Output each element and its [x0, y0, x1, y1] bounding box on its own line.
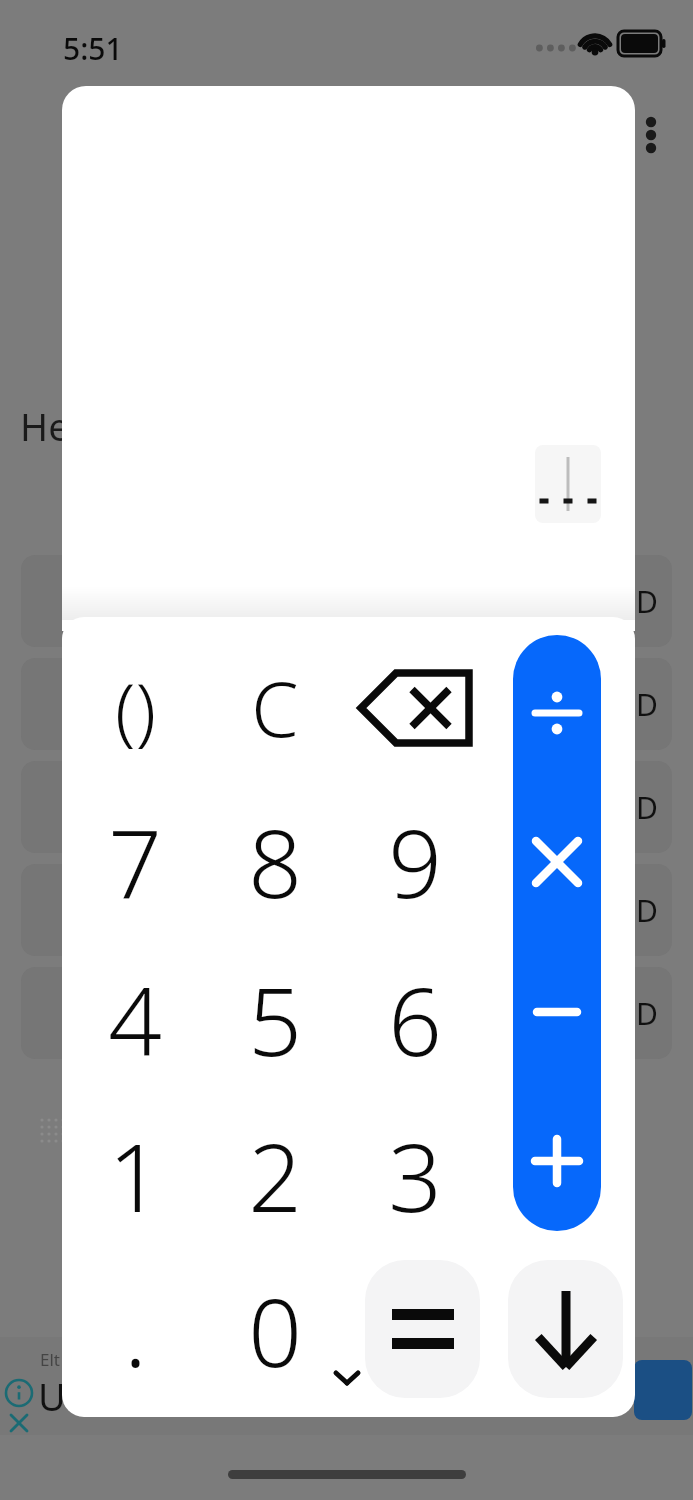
button[interactable]: Subtract	[513, 960, 601, 1064]
button[interactable]: Value input	[535, 445, 601, 523]
staticText: 5	[248, 956, 302, 1080]
staticText: D	[636, 684, 658, 725]
button[interactable]: 7	[65, 798, 205, 922]
button[interactable]: 8	[205, 798, 345, 922]
staticText: Us	[38, 1370, 84, 1422]
button[interactable]: 6	[345, 956, 485, 1080]
staticText: 7	[108, 798, 162, 922]
staticText: 1	[108, 1112, 162, 1236]
button[interactable]: 4	[65, 956, 205, 1080]
button[interactable]: Multiply	[513, 810, 601, 914]
button[interactable]: .	[65, 1267, 205, 1391]
button[interactable]: ()	[65, 646, 205, 770]
staticText: 3	[388, 1112, 442, 1236]
staticText: 5:51	[63, 28, 123, 69]
button[interactable]: 1	[65, 1112, 205, 1236]
button[interactable]: 2	[205, 1112, 345, 1236]
button[interactable]: D	[21, 864, 672, 956]
staticText: 8	[248, 798, 302, 922]
button[interactable]: Insert result	[508, 1260, 623, 1398]
staticText: 2	[248, 1112, 302, 1236]
button[interactable]: Expand	[327, 1362, 367, 1394]
staticText: D	[636, 890, 658, 931]
button[interactable]: Backspace	[345, 653, 485, 763]
button[interactable]: Divide	[513, 661, 601, 765]
staticText: 0	[248, 1267, 302, 1391]
staticText: ()	[115, 658, 156, 759]
button[interactable]: 0	[205, 1267, 345, 1391]
staticText: Elt	[40, 1348, 60, 1371]
button[interactable]: D	[21, 967, 672, 1059]
button[interactable]: D	[21, 658, 672, 750]
button[interactable]: 9	[345, 798, 485, 922]
staticText: D	[636, 993, 658, 1034]
button[interactable]: Equals	[365, 1260, 480, 1398]
button[interactable]: D	[21, 761, 672, 853]
staticText: .	[124, 1267, 147, 1391]
staticText: 4	[108, 956, 162, 1080]
staticText: Height calculator	[20, 400, 325, 452]
button[interactable]: 3	[345, 1112, 485, 1236]
button[interactable]: Banner action	[634, 1360, 692, 1420]
button[interactable]: 5	[205, 956, 345, 1080]
staticText: 6	[388, 956, 442, 1080]
staticText: 9	[388, 798, 442, 922]
button[interactable]: More options	[632, 105, 670, 165]
staticText: D	[636, 787, 658, 828]
button[interactable]: C	[205, 646, 345, 770]
button[interactable]: Information	[4, 1378, 34, 1408]
staticText: C	[251, 656, 299, 760]
button[interactable]: D	[21, 555, 672, 647]
button[interactable]: Close banner	[6, 1410, 32, 1436]
staticText: D	[636, 581, 658, 622]
button[interactable]: Add	[513, 1109, 601, 1213]
